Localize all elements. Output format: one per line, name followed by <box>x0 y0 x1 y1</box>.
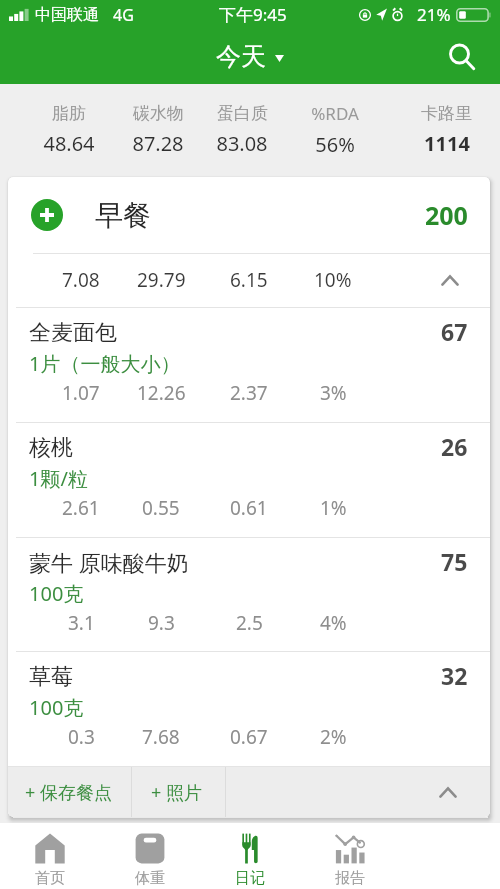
staticText: 29.79 <box>137 267 186 293</box>
button[interactable]: Collapse breakfast <box>410 254 490 307</box>
staticText: 碳水物 <box>133 103 184 124</box>
staticText: + 保存餐点 <box>25 780 112 805</box>
button[interactable]: 报告 <box>300 823 400 889</box>
staticText: 核桃 <box>29 434 73 462</box>
staticText: 首页 <box>35 869 65 888</box>
staticText: 67 <box>441 316 468 347</box>
staticText: 56% <box>315 131 355 158</box>
staticText: 0.3 <box>68 724 95 750</box>
button[interactable]: + 照片 <box>132 767 225 817</box>
staticText: 今天 <box>216 41 266 72</box>
staticText: 全麦面包 <box>29 319 117 347</box>
staticText: 早餐 <box>95 198 151 233</box>
staticText: 0.61 <box>230 495 268 521</box>
staticText: 1颗/粒 <box>29 465 88 492</box>
button[interactable]: 体重 <box>100 823 200 889</box>
staticText: 草莓 <box>29 663 73 691</box>
staticText: 32 <box>441 660 468 691</box>
staticText: 体重 <box>135 869 165 888</box>
staticText: %RDA <box>311 102 359 125</box>
button[interactable]: Search <box>438 33 486 81</box>
staticText: 6.15 <box>230 267 268 293</box>
staticText: 下午9:45 <box>219 3 287 26</box>
staticText: 卡路里 <box>421 103 472 124</box>
staticText: 0.55 <box>142 495 180 521</box>
staticText: 2.5 <box>236 610 263 636</box>
button[interactable]: 日记 <box>200 823 300 889</box>
staticText: 日记 <box>235 869 265 888</box>
staticText: 48.64 <box>43 130 95 157</box>
staticText: 1114 <box>424 130 470 157</box>
staticText: 7.68 <box>142 724 180 750</box>
staticText: 1.07 <box>62 380 100 406</box>
staticText: 蛋白质 <box>217 103 268 124</box>
staticText: 2% <box>320 724 347 750</box>
staticText: 75 <box>441 546 468 577</box>
staticText: 1片（一般大小） <box>29 350 181 377</box>
button[interactable]: 草莓 <box>8 652 490 766</box>
button[interactable]: 核桃 <box>8 423 490 537</box>
button[interactable]: + 保存餐点 <box>8 767 131 817</box>
staticText: 10% <box>314 267 352 293</box>
staticText: 中国联通 <box>35 5 99 25</box>
button[interactable]: Add food <box>8 177 490 253</box>
staticText: 83.08 <box>216 130 268 157</box>
staticText: 100克 <box>29 580 84 607</box>
staticText: 4% <box>320 610 347 636</box>
staticText: 3.1 <box>68 610 95 636</box>
button[interactable]: 今天 <box>206 35 294 78</box>
staticText: 9.3 <box>148 610 175 636</box>
staticText: 2.37 <box>230 380 268 406</box>
staticText: 3% <box>320 380 347 406</box>
staticText: 21% <box>417 3 451 26</box>
staticText: 2.61 <box>62 495 100 521</box>
staticText: 报告 <box>335 869 365 888</box>
staticText: 12.26 <box>137 380 186 406</box>
button[interactable]: 蒙牛 原味酸牛奶 <box>8 538 490 651</box>
staticText: + 照片 <box>151 780 202 805</box>
button[interactable]: 首页 <box>0 823 100 889</box>
button[interactable]: Collapse <box>406 767 490 817</box>
staticText: 4G <box>113 4 134 26</box>
staticText: 蒙牛 原味酸牛奶 <box>29 547 189 577</box>
staticText: 脂肪 <box>52 103 86 124</box>
staticText: 7.08 <box>62 267 100 293</box>
staticText: 26 <box>441 431 468 462</box>
button[interactable]: 全麦面包 <box>8 308 490 422</box>
staticText: 1% <box>320 495 347 521</box>
staticText: 0.67 <box>230 724 268 750</box>
button[interactable]: Add food <box>31 199 63 231</box>
staticText: 100克 <box>29 694 84 721</box>
staticText: 87.28 <box>132 130 184 157</box>
staticText: 200 <box>425 198 468 232</box>
